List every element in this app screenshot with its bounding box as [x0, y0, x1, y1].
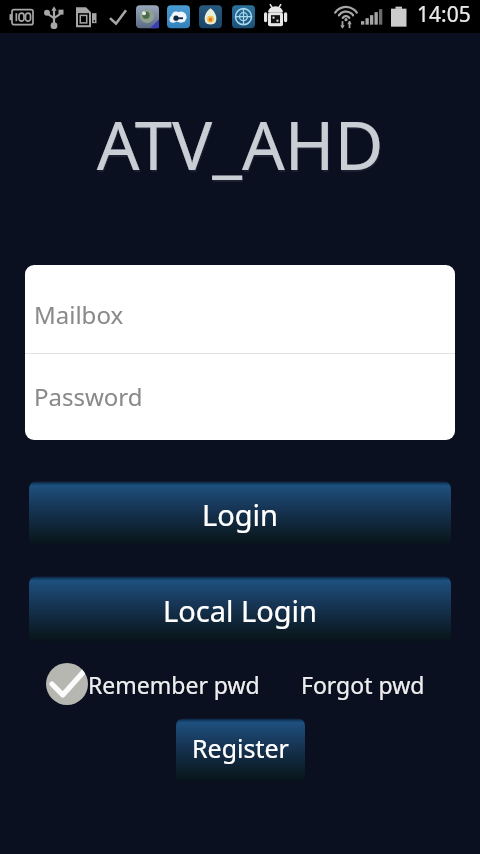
- staticText: Mailbox: [34, 298, 124, 331]
- button[interactable]: Login: [29, 481, 451, 544]
- button[interactable]: Mailbox input field: [25, 265, 455, 353]
- button[interactable]: Password input field: [25, 354, 455, 440]
- staticText: 14:05: [417, 0, 471, 29]
- staticText: Login: [202, 495, 278, 534]
- button[interactable]: Remember pwd: [46, 663, 260, 705]
- button[interactable]: Register: [176, 718, 305, 781]
- button[interactable]: Local Login: [29, 576, 451, 641]
- staticText: Forgot pwd: [301, 669, 425, 700]
- staticText: Register: [192, 731, 289, 765]
- staticText: Remember pwd: [88, 669, 260, 700]
- staticText: ATV_AHD: [0, 98, 480, 189]
- staticText: ATV_AHD: [1, 100, 480, 191]
- staticText: Local Login: [163, 591, 317, 630]
- button[interactable]: Forgot pwd: [301, 669, 425, 700]
- staticText: Password: [34, 380, 143, 413]
